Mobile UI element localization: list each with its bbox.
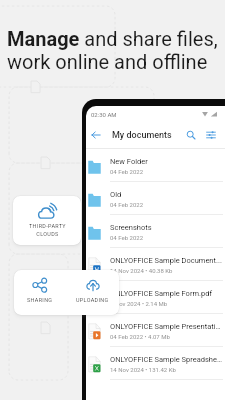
staticText: THIRD-PARTY CLOUDS: [29, 223, 66, 237]
button[interactable]: THIRD-PARTY CLOUDS: [13, 196, 81, 245]
staticText: 04 Feb 2022: [110, 234, 144, 241]
staticText: Screenshots: [110, 223, 152, 232]
staticText: ONLYOFFICE Sample Form.pdf: [110, 289, 213, 298]
staticText: 04 Feb 2022: [110, 201, 144, 208]
staticText: UPLOADING: [76, 297, 109, 303]
button[interactable]: Old: [86, 182, 225, 215]
staticText: ONLYOFFICE Sample Document...: [110, 256, 222, 265]
staticText: work online and offline: [7, 50, 208, 73]
staticText: Old: [110, 190, 122, 199]
staticText: Manage and share files,: [7, 27, 218, 50]
button[interactable]: ONLYOFFICE Sample Form.pdf: [86, 281, 225, 314]
staticText: SHARING: [27, 297, 53, 303]
button[interactable]: Screenshots: [86, 215, 225, 248]
button[interactable]: New Folder: [86, 149, 225, 182]
button[interactable]: ONLYOFFICE Sample Document...: [86, 248, 225, 281]
button[interactable]: UPLOADING: [66, 270, 119, 315]
staticText: 04 Feb 2022 • 4.07 Mb: [110, 333, 170, 340]
staticText: ONLYOFFICE Sample Presentatio...: [110, 322, 223, 331]
staticText: 14 Nov 2024 • 40.38 Kb: [110, 267, 173, 274]
staticText: 14 Nov 2024 • 131.42 Kb: [110, 366, 176, 373]
button[interactable]: Sort and filter: [204, 128, 218, 142]
staticText: ONLYOFFICE Sample Spreadshee...: [110, 355, 223, 364]
staticText: New Folder: [110, 157, 148, 166]
staticText: 1 Nov 2024 • 2.14 Mb: [110, 300, 168, 307]
button[interactable]: Back: [89, 128, 103, 142]
staticText: 02:30 AM: [91, 111, 117, 118]
staticText: My documents: [112, 130, 172, 141]
button[interactable]: ONLYOFFICE Sample Presentatio...: [86, 314, 225, 347]
staticText: 04 Feb 2022: [110, 168, 144, 175]
button[interactable]: ONLYOFFICE Sample Spreadshee...: [86, 347, 225, 380]
button[interactable]: SHARING: [14, 270, 66, 315]
button[interactable]: Search: [184, 128, 198, 142]
